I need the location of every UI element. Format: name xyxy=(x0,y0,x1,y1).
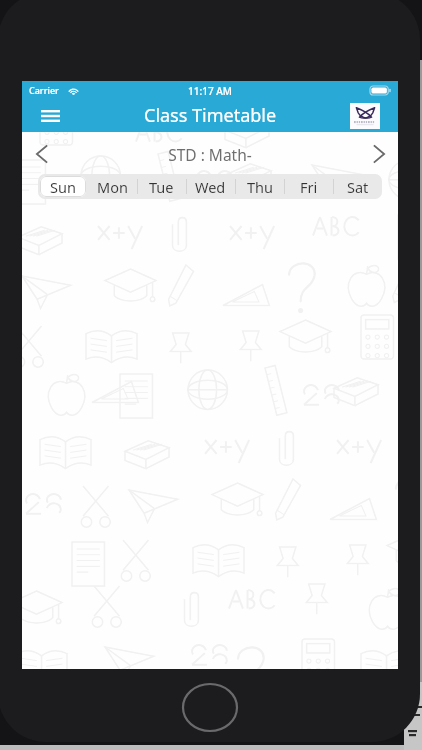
button[interactable]: Sat xyxy=(333,174,382,199)
button[interactable]: Wed xyxy=(186,174,235,199)
staticText: Tue xyxy=(149,177,174,197)
button[interactable]: Fri xyxy=(284,174,333,199)
button[interactable]: Thu xyxy=(235,174,284,199)
staticText: Fri xyxy=(300,177,318,197)
staticText: Mon xyxy=(97,177,128,197)
button[interactable]: Home xyxy=(182,683,238,732)
button[interactable]: Transition logo xyxy=(350,103,380,129)
staticText: Thu xyxy=(247,177,273,197)
button[interactable]: Mon xyxy=(88,174,137,199)
button[interactable]: Sun xyxy=(38,174,88,199)
staticText: Sat xyxy=(347,177,369,197)
staticText: Wed xyxy=(195,177,226,197)
button[interactable]: Previous day xyxy=(29,139,53,168)
staticText: 11:17 AM xyxy=(188,84,232,98)
staticText: Sun xyxy=(50,177,76,197)
button[interactable]: Next day xyxy=(367,139,391,168)
button[interactable]: Tue xyxy=(137,174,186,199)
button[interactable]: Open navigation menu xyxy=(39,106,61,126)
staticText: Class Timetable xyxy=(144,103,277,128)
staticText: STD : Math- xyxy=(168,144,252,165)
staticText: Carrier xyxy=(29,84,59,96)
